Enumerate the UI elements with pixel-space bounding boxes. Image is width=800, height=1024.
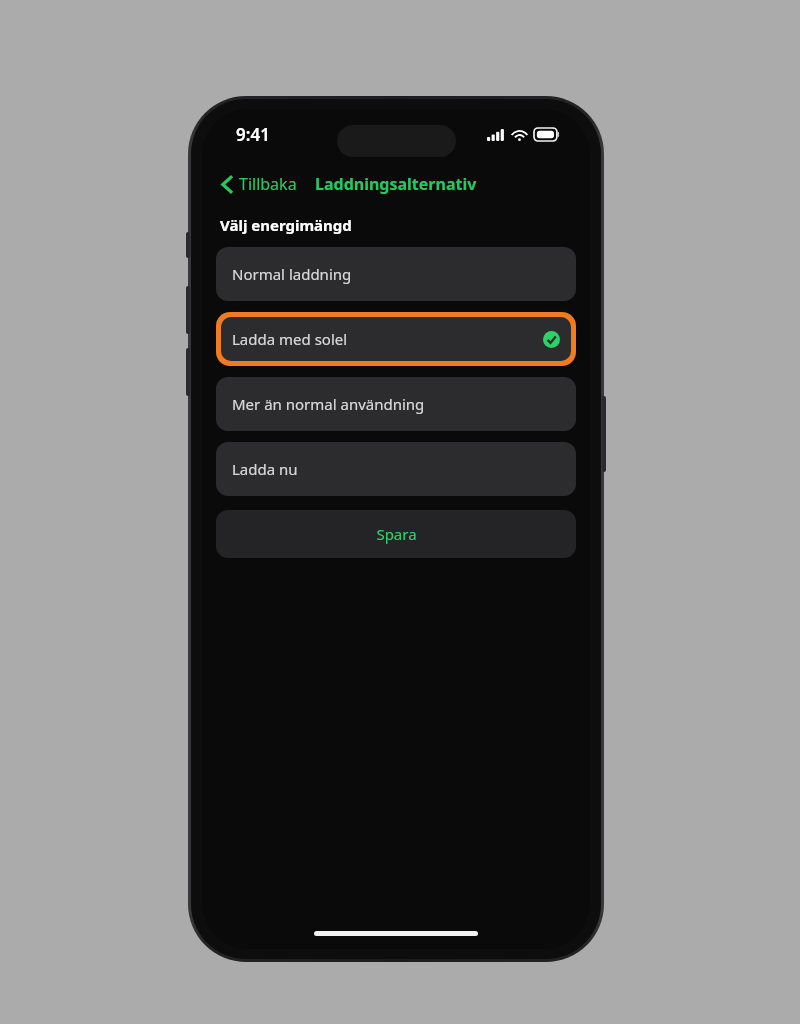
staticText: Ladda med solel	[232, 329, 348, 349]
button[interactable]: Spara	[216, 510, 576, 558]
staticText: Ladda nu	[232, 459, 298, 479]
staticText: 9:41	[236, 123, 270, 146]
staticText: Tillbaka	[239, 173, 297, 195]
staticText: Normal laddning	[232, 264, 352, 284]
staticText: Laddningsalternativ	[315, 173, 477, 195]
button[interactable]: Ladda med solel	[216, 312, 576, 366]
button[interactable]: Mer än normal användning	[216, 377, 576, 431]
button[interactable]: Tillbaka	[216, 170, 303, 198]
button[interactable]: Ladda nu	[216, 442, 576, 496]
staticText: Mer än normal användning	[232, 394, 425, 414]
button[interactable]: Normal laddning	[216, 247, 576, 301]
staticText: Spara	[376, 524, 417, 544]
staticText: Välj energimängd	[220, 215, 352, 235]
